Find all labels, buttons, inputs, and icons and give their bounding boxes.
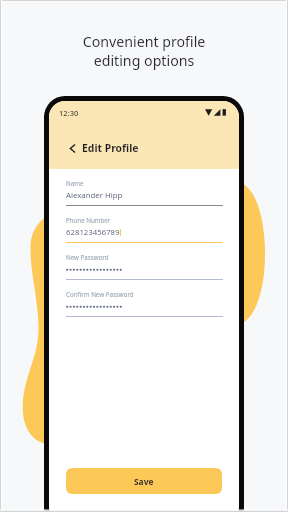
- button[interactable]: Name: [66, 179, 223, 206]
- button[interactable]: Confirm New Password: [66, 290, 223, 317]
- staticText: Alexander Hipp: [66, 190, 123, 201]
- staticText: Name: [66, 179, 84, 187]
- button[interactable]: Back: [65, 141, 79, 155]
- staticText: Phone Number: [66, 216, 111, 224]
- staticText: 12:30: [59, 108, 79, 118]
- staticText: Edit Profile: [82, 141, 139, 155]
- staticText: 628123456789: [66, 227, 120, 238]
- staticText: Confirm New Password: [66, 290, 134, 298]
- button[interactable]: Save: [66, 468, 222, 494]
- button[interactable]: New Password: [66, 253, 223, 280]
- button[interactable]: Phone Number: [66, 216, 223, 243]
- staticText: Save: [134, 476, 154, 487]
- staticText: Convenient profile editing options: [0, 32, 288, 70]
- staticText: New Password: [66, 253, 109, 261]
